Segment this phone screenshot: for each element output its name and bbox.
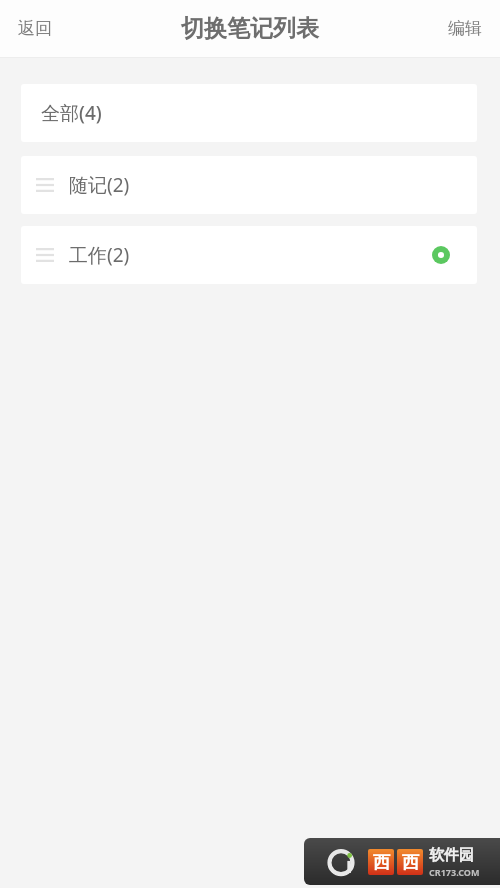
button[interactable]: 全部(4)	[21, 84, 477, 142]
staticText: 西	[373, 852, 390, 873]
staticText: 编辑	[448, 18, 482, 39]
staticText: 全部(4)	[41, 100, 102, 126]
button[interactable]: 返回	[8, 10, 62, 47]
staticText: CR173.COM	[429, 866, 480, 878]
staticText: 返回	[18, 18, 52, 39]
button[interactable]: 编辑	[438, 10, 492, 47]
staticText: 软件园	[429, 846, 474, 865]
staticText: 切换笔记列表	[181, 14, 319, 43]
button[interactable]: Reorder	[21, 156, 477, 214]
other: Reorder	[36, 178, 54, 192]
staticText: 西	[402, 852, 419, 873]
staticText: 工作(2)	[69, 242, 130, 268]
button[interactable]: Reorder	[21, 226, 477, 284]
other: Reorder	[36, 248, 54, 262]
staticText: 随记(2)	[69, 172, 130, 198]
